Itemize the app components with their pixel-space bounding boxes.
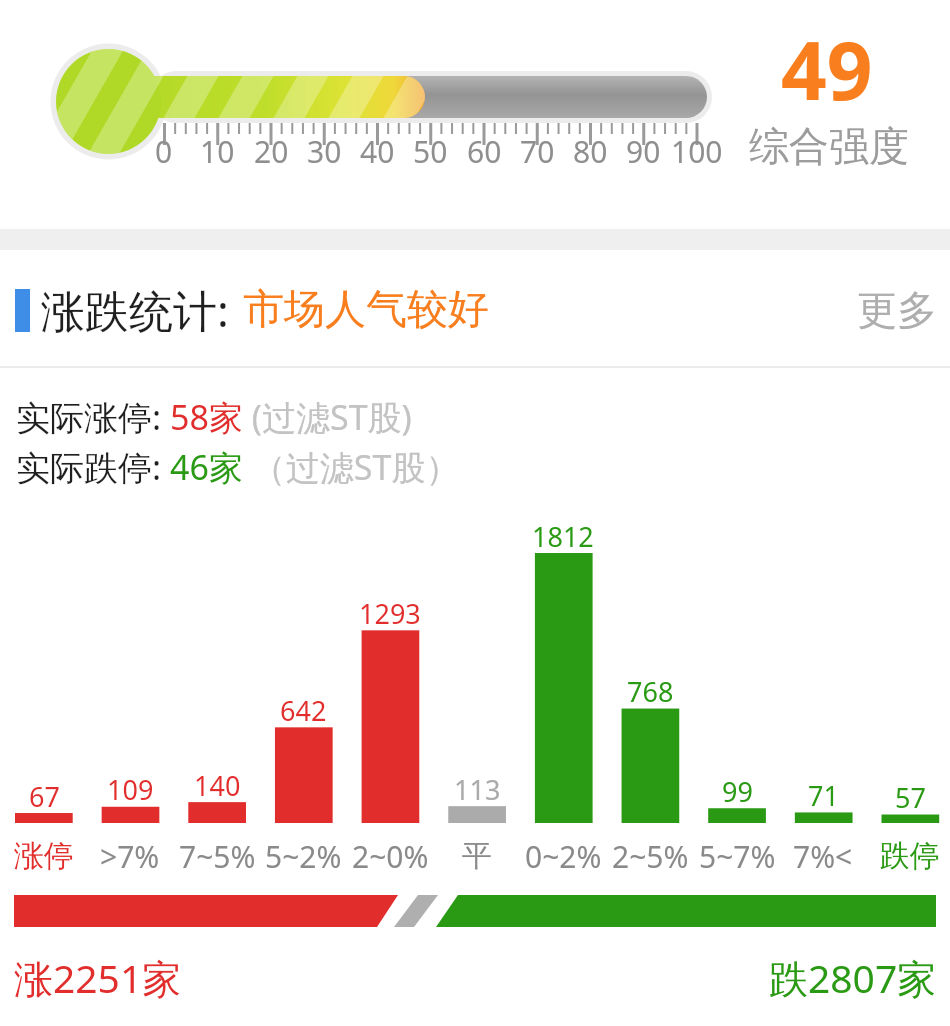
staticText: 60	[467, 131, 502, 172]
staticText: 58家	[170, 394, 243, 440]
staticText: 30	[307, 131, 342, 172]
staticText: 71	[808, 777, 839, 814]
staticText: 7~5%	[179, 836, 256, 877]
staticText: >7%	[100, 836, 160, 877]
staticText: 涨停	[14, 837, 74, 875]
staticText: 市场人气较好	[243, 284, 489, 336]
staticText: 0	[155, 131, 173, 172]
staticText: 90	[626, 131, 661, 172]
staticText: 1293	[359, 595, 421, 632]
staticText: 57	[895, 779, 926, 816]
staticText: 99	[722, 773, 753, 810]
staticText: 100	[671, 131, 723, 172]
staticText: 642	[280, 692, 327, 729]
staticText: 49	[781, 14, 873, 123]
staticText: 涨2251家	[14, 951, 182, 1004]
staticText: 实际跌停:	[16, 444, 170, 490]
staticText: 1812	[532, 518, 594, 555]
staticText: 平	[462, 837, 492, 875]
staticText: 5~2%	[265, 836, 342, 877]
staticText: 涨跌统计:	[41, 280, 229, 340]
staticText: 5~7%	[699, 836, 776, 877]
button[interactable]: 更多	[847, 285, 947, 335]
staticText: 109	[107, 771, 154, 808]
staticText: 2~0%	[352, 836, 429, 877]
staticText: 10	[200, 131, 235, 172]
staticText: 40	[360, 131, 395, 172]
staticText: 80	[573, 131, 608, 172]
staticText: 更多	[857, 285, 937, 335]
staticText: （过滤ST股）	[243, 444, 460, 490]
staticText: 0~2%	[525, 836, 602, 877]
staticText: 46家	[170, 444, 243, 490]
staticText: 768	[627, 673, 674, 710]
staticText: 2~5%	[612, 836, 689, 877]
staticText: 跌2807家	[769, 951, 937, 1004]
staticText: 实际涨停:	[16, 394, 170, 440]
staticText: 67	[29, 778, 60, 815]
staticText: 综合强度	[749, 121, 909, 171]
staticText: 70	[520, 131, 555, 172]
staticText: 140	[194, 767, 241, 804]
staticText: 7%<	[793, 836, 853, 877]
staticText: 50	[413, 131, 448, 172]
staticText: 113	[454, 771, 501, 808]
staticText: 20	[254, 131, 289, 172]
staticText: (过滤ST股)	[243, 394, 412, 440]
staticText: 跌停	[880, 837, 940, 875]
